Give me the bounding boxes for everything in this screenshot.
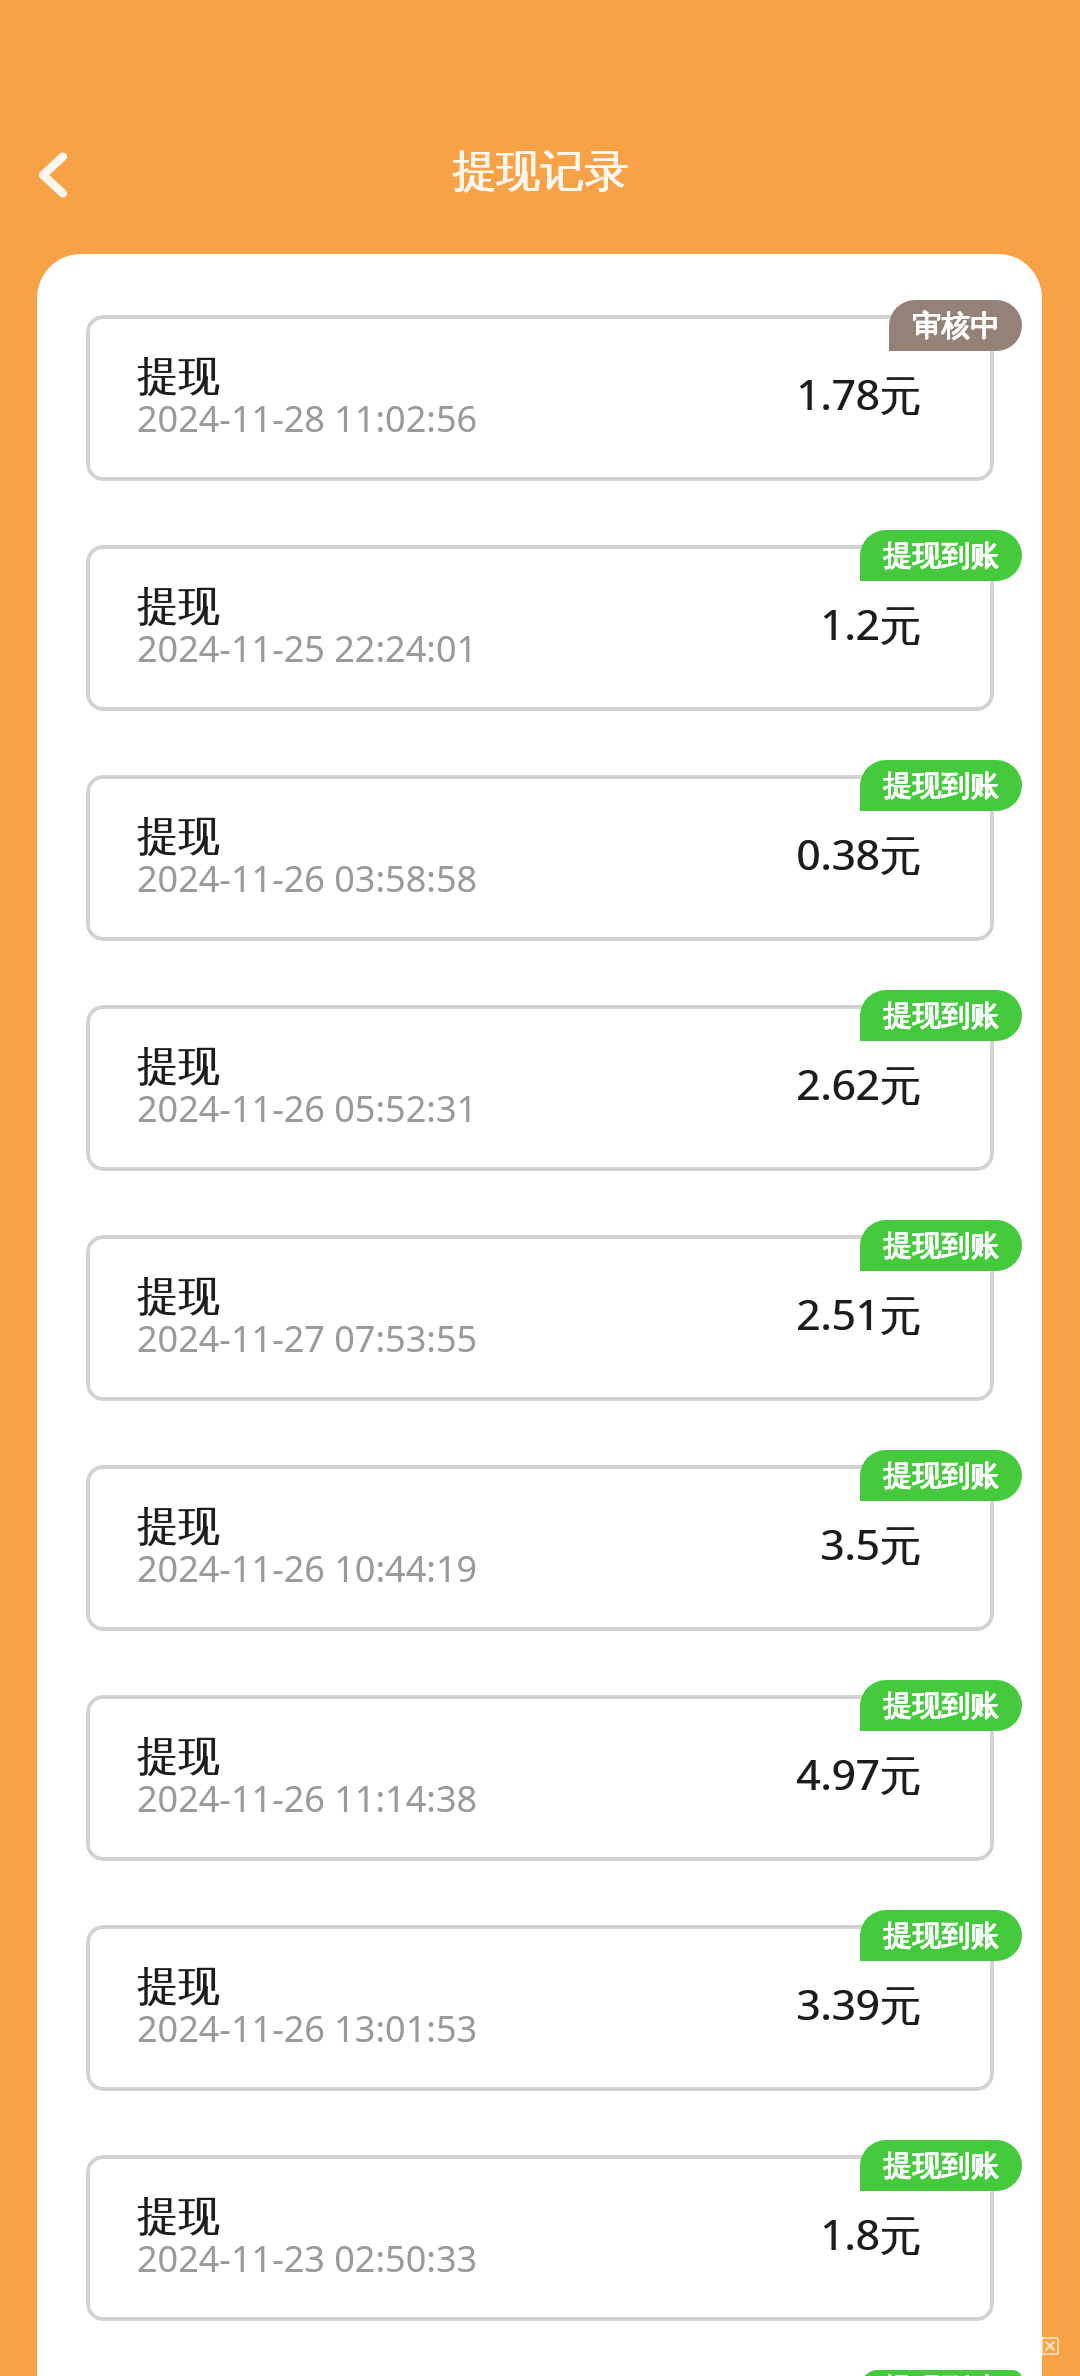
staticText: 提现到账: [883, 538, 999, 575]
staticText: 提现到账: [883, 1457, 999, 1494]
staticText: 3.39元: [797, 1975, 923, 2032]
staticText: 提现: [137, 351, 219, 403]
button[interactable]: 提现: [86, 2155, 994, 2321]
staticText: 提现: [137, 1501, 219, 1553]
staticText: 1.8元: [821, 2205, 923, 2262]
staticText: 提现到账: [883, 1917, 999, 1954]
staticText: 提现到账: [884, 767, 1000, 804]
staticText: 2.62元: [796, 1055, 922, 1112]
staticText: 4.97元: [796, 1745, 922, 1802]
staticText: 提现: [138, 351, 220, 403]
staticText: 2.62元: [797, 1055, 923, 1112]
button[interactable]: 提现: [86, 315, 994, 481]
staticText: 提现到账: [883, 537, 999, 574]
button[interactable]: Close: [1042, 2338, 1058, 2354]
staticText: 提现到账: [883, 2147, 999, 2184]
staticText: 提现: [138, 1961, 220, 2013]
staticText: 2024-11-26 03:58:58: [137, 854, 478, 903]
staticText: 3.5元: [821, 1515, 923, 1572]
button[interactable]: 提现: [86, 1695, 994, 1861]
staticText: 2024-11-26 11:14:38: [137, 1774, 478, 1823]
staticText: 1.78元: [796, 365, 922, 422]
staticText: 审核中: [912, 308, 999, 345]
staticText: 提现到账: [884, 1917, 1000, 1954]
staticText: 提现: [138, 581, 220, 633]
staticText: 提现: [138, 811, 220, 863]
staticText: 审核中: [913, 307, 1000, 344]
staticText: 2024-11-26 05:52:31: [137, 1084, 478, 1133]
staticText: 提现到账: [884, 537, 1000, 574]
staticText: 提现到账: [883, 1227, 999, 1264]
staticText: 2024-11-26 13:01:53: [137, 2004, 478, 2053]
staticText: 提现: [137, 1271, 219, 1323]
button[interactable]: 提现: [86, 1005, 994, 1171]
staticText: 2024-11-28 11:02:56: [137, 394, 478, 443]
staticText: 提现到账: [883, 2371, 999, 2376]
staticText: 提现到账: [883, 2370, 999, 2376]
staticText: 提现: [137, 2191, 219, 2243]
staticText: 提现到账: [883, 768, 999, 805]
staticText: 提现到账: [883, 1458, 999, 1495]
staticText: 提现: [138, 1501, 220, 1553]
staticText: 提现到账: [884, 1457, 1000, 1494]
staticText: 提现: [138, 2191, 220, 2243]
staticText: 4.97元: [797, 1745, 923, 1802]
staticText: 2024-11-25 22:24:01: [137, 624, 478, 673]
staticText: 提现到账: [884, 1227, 1000, 1264]
staticText: 2024-11-26 10:44:19: [137, 1544, 478, 1593]
staticText: 1.8元: [820, 2205, 922, 2262]
staticText: 提现记录: [453, 144, 629, 199]
staticText: 提现到账: [884, 1687, 1000, 1724]
staticText: 提现到账: [883, 1688, 999, 1725]
staticText: 提现到账: [883, 2148, 999, 2185]
staticText: 3.5元: [820, 1515, 922, 1572]
button[interactable]: 提现: [86, 545, 994, 711]
button[interactable]: Back: [10, 132, 96, 218]
staticText: 提现: [137, 581, 219, 633]
staticText: 提现到账: [884, 2147, 1000, 2184]
button[interactable]: 提现: [86, 1925, 994, 2091]
staticText: 提现到账: [883, 1918, 999, 1955]
button[interactable]: 提现: [86, 1235, 994, 1401]
staticText: 1.78元: [797, 365, 923, 422]
staticText: 提现到账: [883, 1228, 999, 1265]
staticText: 0.38元: [796, 825, 922, 882]
button[interactable]: 提现: [86, 775, 994, 941]
button[interactable]: 提现: [86, 1465, 994, 1631]
staticText: 2024-11-27 07:53:55: [137, 1314, 478, 1363]
staticText: 提现到账: [883, 767, 999, 804]
staticText: 提现到账: [884, 2370, 1000, 2376]
staticText: 提现: [138, 1271, 220, 1323]
staticText: 提现: [137, 1041, 219, 1093]
staticText: 提现: [137, 1731, 219, 1783]
staticText: 提现记录: [452, 144, 628, 199]
staticText: 提现到账: [883, 1687, 999, 1724]
staticText: 提现: [138, 1041, 220, 1093]
staticText: 提现: [137, 1961, 219, 2013]
staticText: 审核中: [912, 307, 999, 344]
staticText: 2.51元: [797, 1285, 923, 1342]
staticText: 0.38元: [797, 825, 923, 882]
staticText: 2.51元: [796, 1285, 922, 1342]
staticText: 1.2元: [820, 595, 922, 652]
staticText: 提现到账: [884, 997, 1000, 1034]
staticText: 提现到账: [883, 997, 999, 1034]
staticText: 提现到账: [883, 998, 999, 1035]
staticText: 1.2元: [821, 595, 923, 652]
staticText: 提现: [137, 811, 219, 863]
staticText: 2024-11-23 02:50:33: [137, 2234, 478, 2283]
staticText: 3.39元: [796, 1975, 922, 2032]
staticText: 提现: [138, 1731, 220, 1783]
